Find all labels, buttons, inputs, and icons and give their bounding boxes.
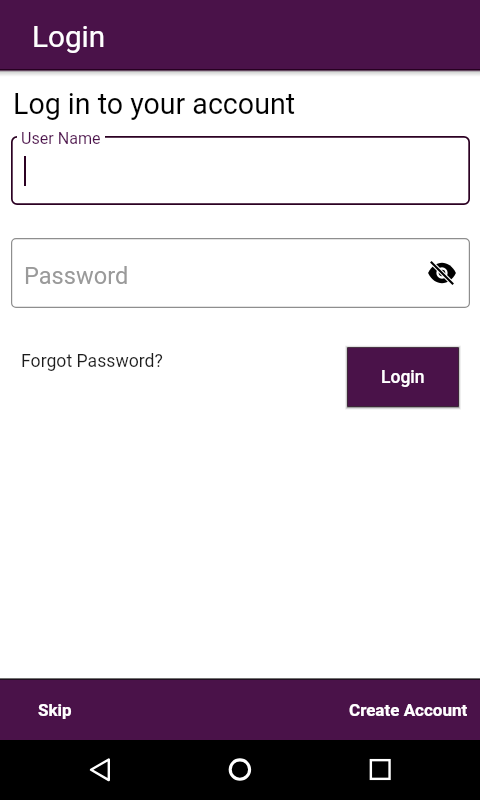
staticText: Forgot Password?	[21, 351, 163, 372]
staticText: Login	[32, 19, 106, 54]
staticText: Skip	[38, 700, 72, 720]
staticText: Password	[24, 262, 129, 290]
button[interactable]: Login	[348, 348, 458, 406]
button[interactable]: Show password	[425, 256, 459, 290]
button[interactable]: Skip	[38, 700, 72, 720]
staticText: Log in to your account	[13, 87, 296, 121]
staticText: Login	[381, 367, 425, 388]
button[interactable]: Back	[70, 740, 130, 800]
staticText: Create Account	[349, 700, 468, 720]
button[interactable]: Create Account	[349, 700, 468, 720]
button[interactable]: Forgot Password?	[21, 351, 163, 372]
staticText: User Name	[21, 129, 101, 148]
button[interactable]: Home	[210, 740, 270, 800]
button[interactable]: Recent apps	[350, 740, 410, 800]
